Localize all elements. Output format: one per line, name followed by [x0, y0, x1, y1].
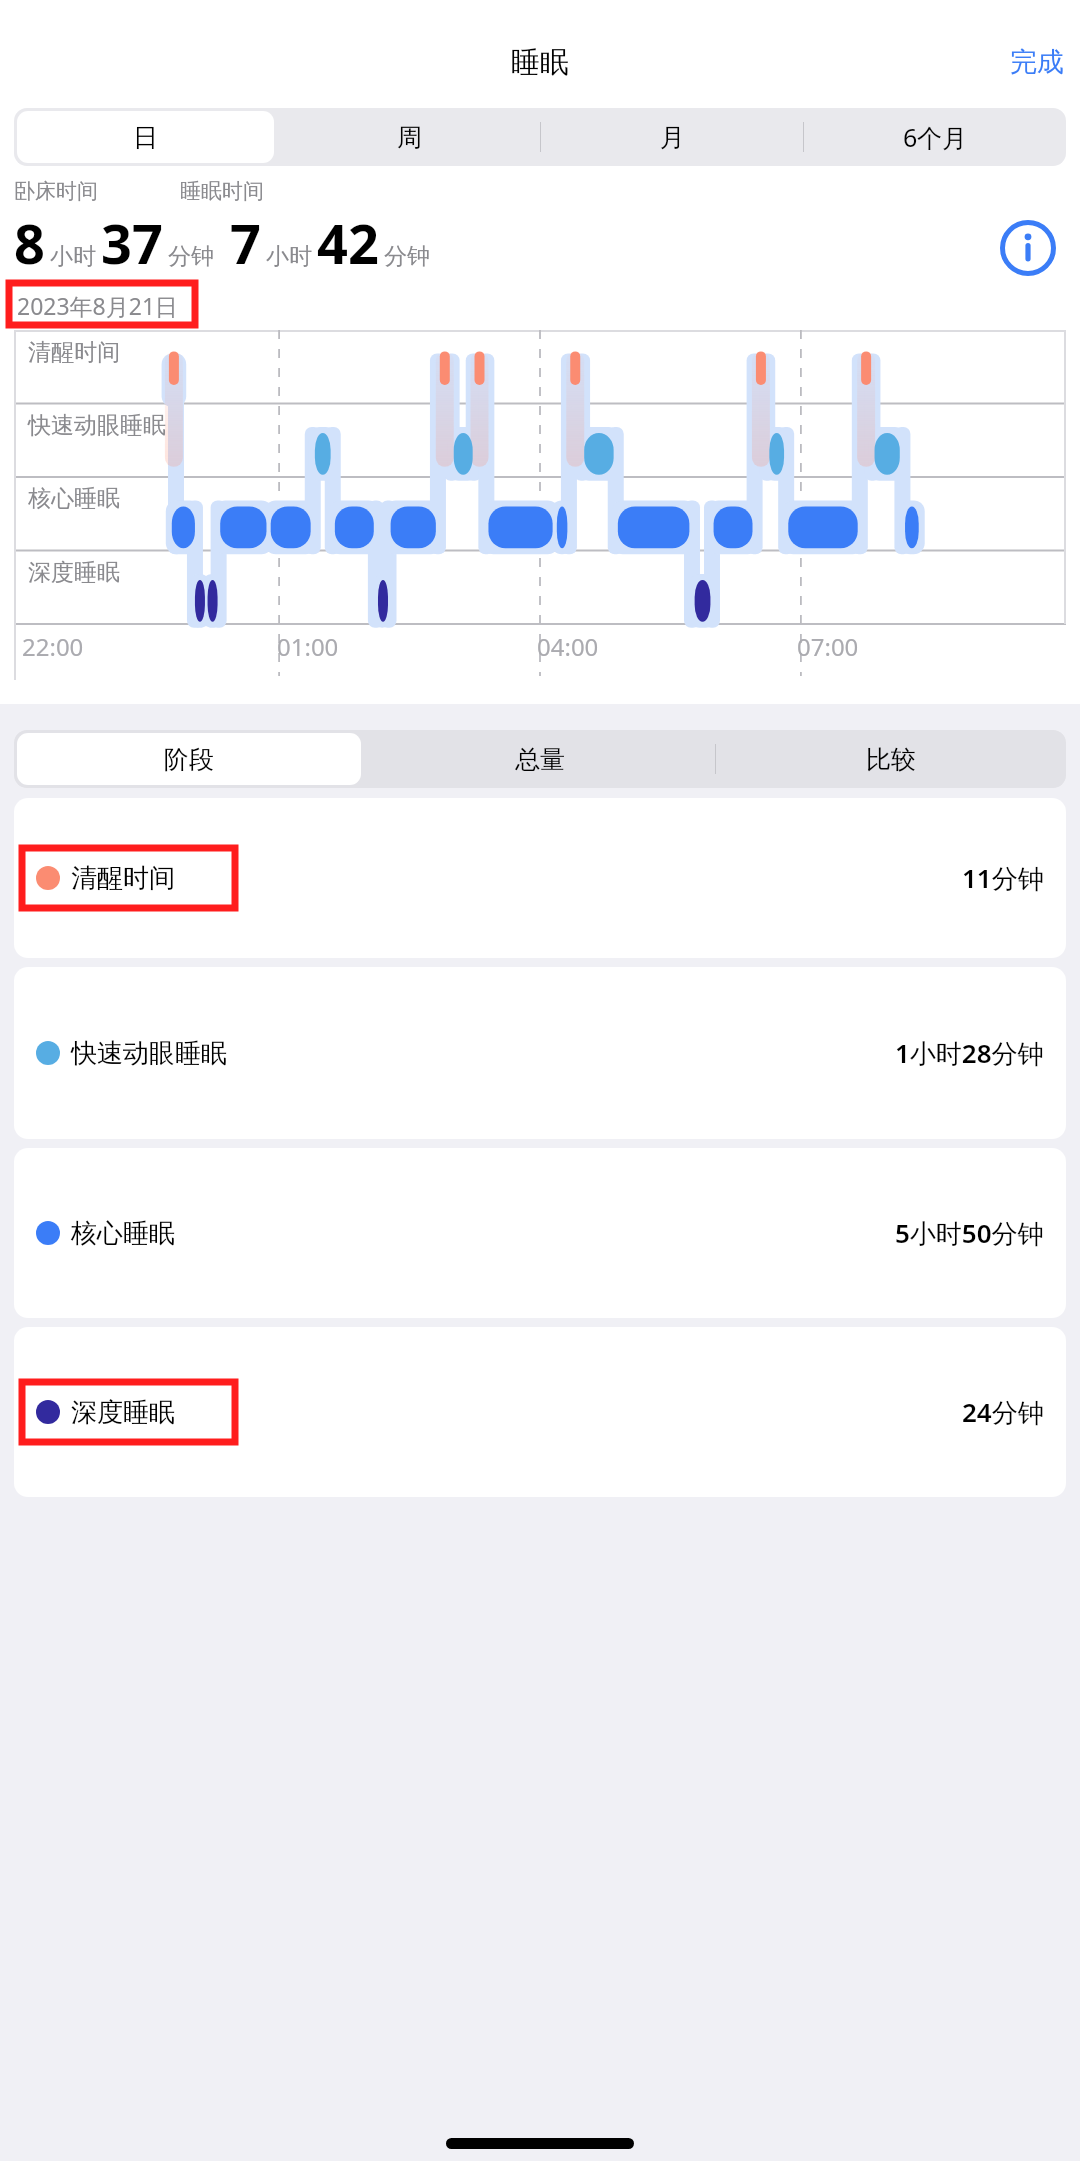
- button[interactable]: 完成: [994, 37, 1080, 87]
- button[interactable]: 快速动眼睡眠: [14, 967, 1066, 1139]
- staticText: 核心睡眠: [71, 1217, 175, 1250]
- staticText: 8: [14, 206, 45, 280]
- staticText: 07:00: [797, 630, 859, 663]
- staticText: 分钟: [384, 242, 430, 271]
- staticText: 周: [397, 122, 422, 153]
- staticText: 比较: [866, 744, 916, 775]
- button[interactable]: 信息: [996, 216, 1060, 280]
- button[interactable]: 深度睡眠: [14, 1327, 1066, 1497]
- staticText: 42: [317, 206, 379, 280]
- staticText: 日: [133, 122, 158, 153]
- staticText: 37: [101, 206, 163, 280]
- button[interactable]: 周: [281, 111, 537, 163]
- staticText: 小时: [266, 242, 312, 271]
- staticText: 完成: [1010, 45, 1064, 79]
- button[interactable]: 月: [544, 111, 800, 163]
- button[interactable]: 清醒时间: [14, 798, 1066, 958]
- staticText: 小时: [50, 242, 96, 271]
- button[interactable]: 日: [17, 111, 274, 163]
- staticText: 2023年8月21日: [17, 290, 179, 321]
- staticText: 快速动眼睡眠: [71, 1037, 227, 1070]
- staticText: 深度睡眠: [28, 558, 120, 587]
- staticText: 01:00: [277, 630, 339, 663]
- staticText: 核心睡眠: [28, 484, 120, 513]
- button[interactable]: 比较: [719, 733, 1063, 785]
- staticText: 11分钟: [962, 860, 1044, 896]
- staticText: 5小时50分钟: [895, 1215, 1044, 1251]
- staticText: 总量: [515, 744, 565, 775]
- staticText: 卧床时间: [14, 178, 180, 204]
- staticText: 7: [230, 206, 261, 280]
- staticText: 睡眠: [511, 44, 569, 81]
- staticText: 快速动眼睡眠: [28, 411, 166, 440]
- button[interactable]: 核心睡眠: [14, 1148, 1066, 1318]
- staticText: 分钟: [168, 242, 214, 271]
- staticText: 阶段: [164, 744, 214, 775]
- button[interactable]: 6个月: [807, 111, 1063, 163]
- button[interactable]: 总量: [368, 733, 712, 785]
- button[interactable]: 阶段: [17, 733, 361, 785]
- staticText: 04:00: [537, 630, 599, 663]
- staticText: 22:00: [22, 630, 84, 663]
- staticText: 睡眠时间: [180, 178, 264, 204]
- staticText: 6个月: [903, 120, 968, 154]
- staticText: 月: [660, 122, 685, 153]
- staticText: 清醒时间: [28, 338, 120, 367]
- staticText: 深度睡眠: [71, 1396, 175, 1429]
- staticText: 1小时28分钟: [895, 1035, 1044, 1071]
- staticText: 24分钟: [962, 1394, 1044, 1430]
- staticText: 清醒时间: [71, 862, 175, 895]
